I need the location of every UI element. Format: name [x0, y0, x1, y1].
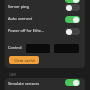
staticText: : [51, 45, 53, 51]
button[interactable]: Clear cache [9, 56, 39, 64]
button[interactable]: Keep screen on [65, 0, 80, 3]
staticText: VIEW [9, 73, 16, 77]
staticText: Server ping [8, 4, 29, 9]
button[interactable] [5, 25, 85, 37]
staticText: Control [8, 45, 22, 50]
button[interactable]: Power off for Ethernet [65, 28, 80, 35]
button[interactable] [5, 78, 85, 90]
button[interactable]: Server ping [65, 4, 80, 11]
button[interactable]: Auto connect [65, 16, 80, 23]
button[interactable]: Simulate sensors [65, 79, 80, 86]
button[interactable] [5, 41, 85, 54]
button[interactable] [5, 13, 85, 25]
staticText: Auto connect [8, 16, 33, 21]
staticText: Clear cache [14, 58, 35, 63]
button[interactable] [5, 1, 85, 13]
staticText: Simulate sensors [8, 81, 40, 86]
staticText: Power off for Ethe… [8, 28, 45, 33]
